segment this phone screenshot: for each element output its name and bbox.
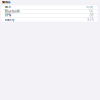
button[interactable]: Wi-Fi bbox=[1, 5, 97, 9]
staticText: Bluetooth bbox=[5, 10, 20, 13]
button[interactable]: Bluetooth bbox=[1, 9, 97, 13]
staticText: VPN bbox=[5, 14, 11, 17]
staticText: 82% bbox=[87, 18, 93, 21]
staticText: Status bbox=[2, 0, 10, 4]
staticText: Off bbox=[89, 14, 93, 17]
staticText: Home bbox=[85, 5, 93, 9]
button[interactable]: Battery bbox=[1, 18, 97, 21]
button[interactable]: VPN bbox=[1, 13, 97, 18]
staticText: Battery bbox=[5, 18, 14, 21]
staticText: On bbox=[89, 10, 93, 13]
staticText: Wi-Fi bbox=[5, 5, 11, 9]
